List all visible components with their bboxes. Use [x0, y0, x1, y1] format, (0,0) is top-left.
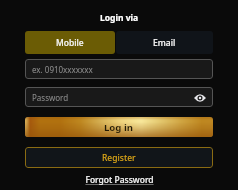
staticText: ex. 0910xxxxxxx	[32, 64, 93, 75]
button[interactable]: Register	[25, 147, 213, 168]
button[interactable]: Email	[116, 31, 213, 54]
staticText: Password	[32, 92, 69, 103]
button[interactable]: ex. 0910xxxxxxx	[25, 59, 213, 79]
staticText: Log in	[104, 121, 134, 134]
button[interactable]: Log in	[25, 117, 213, 137]
button[interactable]: Password	[25, 87, 213, 107]
staticText: Login via	[100, 12, 139, 24]
button[interactable]: Mobile	[25, 31, 115, 54]
button[interactable]: Forgot Password	[85, 174, 154, 186]
staticText: Email	[153, 37, 176, 49]
staticText: Mobile	[56, 37, 84, 49]
staticText: Register	[102, 152, 136, 164]
button[interactable]: Show password	[193, 91, 206, 104]
